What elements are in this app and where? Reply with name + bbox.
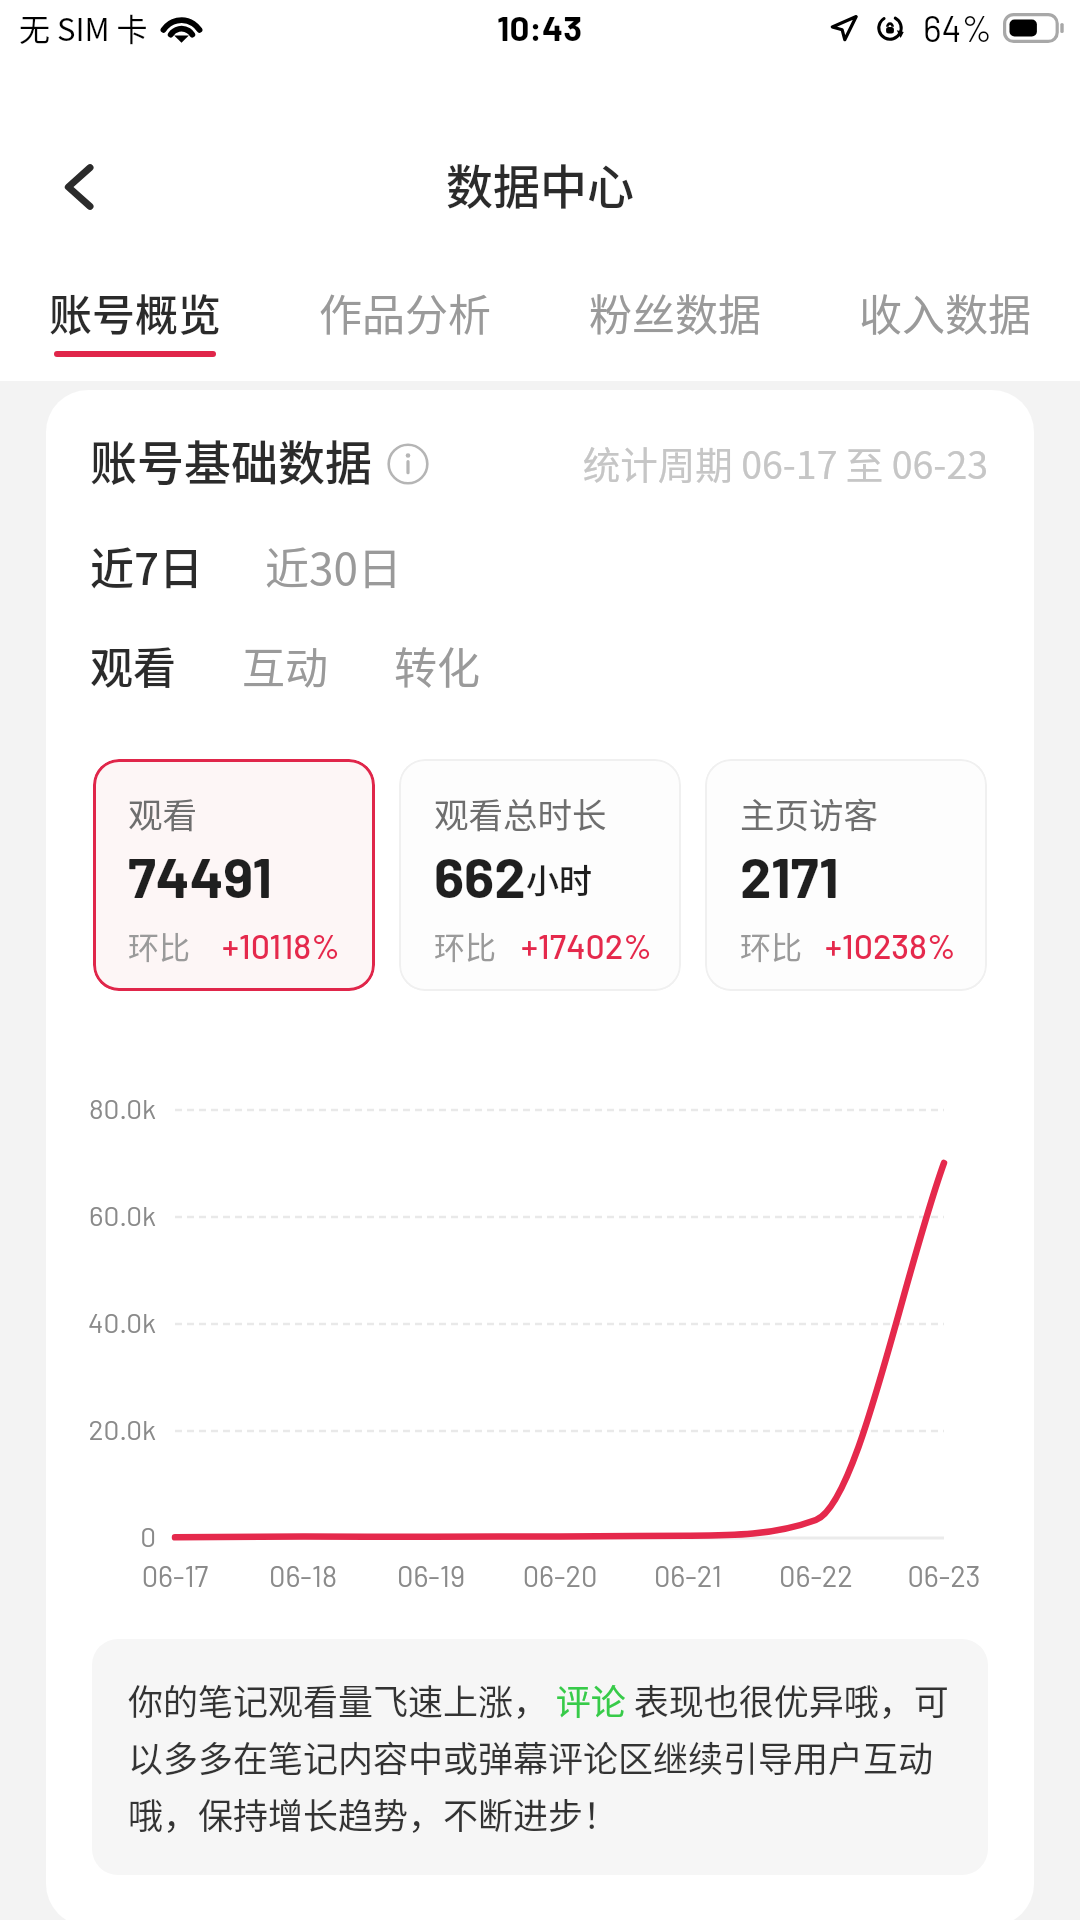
staticText: 80.0k	[0, 1091, 156, 1125]
staticText: 2171	[740, 842, 839, 909]
staticText: 观看	[128, 788, 197, 838]
staticText: 近30日	[265, 534, 402, 598]
staticText: 06-19	[361, 1558, 501, 1593]
staticText: 数据中心	[446, 149, 634, 217]
staticText: 近7日	[90, 534, 204, 598]
staticText: 收入数据	[859, 281, 1031, 343]
button[interactable]: 主页访客	[705, 759, 987, 991]
button[interactable]: 收入数据	[810, 281, 1080, 375]
staticText: 06-20	[490, 1558, 630, 1593]
staticText: 无 SIM 卡	[19, 5, 148, 50]
staticText: +10238%	[825, 925, 956, 966]
staticText: 环比	[128, 923, 190, 968]
button[interactable]: 观看总时长	[399, 759, 681, 991]
button[interactable]: 近7日	[90, 534, 204, 598]
staticText: 10:43	[497, 6, 583, 48]
staticText: 06-21	[618, 1558, 758, 1593]
staticText: +17402%	[521, 925, 652, 966]
staticText: 作品分析	[319, 281, 491, 343]
staticText: 主页访客	[740, 788, 878, 838]
staticText: 662	[434, 842, 526, 909]
staticText: 环比	[434, 923, 496, 968]
button[interactable]: 观看	[90, 634, 176, 696]
staticText: 06-18	[233, 1558, 373, 1593]
staticText: 0	[0, 1519, 156, 1553]
staticText: 统计周期 06-17 至 06-23	[0, 435, 988, 489]
button[interactable]: 互动	[242, 634, 328, 696]
button[interactable]: Back	[52, 149, 128, 225]
staticText: 40.0k	[0, 1305, 156, 1339]
staticText: 环比	[740, 923, 802, 968]
staticText: 账号基础数据	[90, 425, 372, 493]
button[interactable]: 作品分析	[270, 281, 540, 375]
staticText: 互动	[242, 634, 328, 696]
button[interactable]: 近30日	[265, 534, 402, 598]
staticText: 观看总时长	[434, 788, 607, 838]
button[interactable]: 粉丝数据	[540, 281, 810, 375]
staticText: 账号概览	[49, 281, 221, 343]
staticText: 06-22	[746, 1558, 886, 1593]
button[interactable]: Info	[387, 443, 429, 485]
staticText: 06-23	[874, 1558, 1014, 1593]
staticText: 转化	[394, 634, 480, 696]
staticText: 小时	[526, 855, 592, 903]
button[interactable]: 账号概览	[0, 281, 270, 375]
staticText: 60.0k	[0, 1198, 156, 1232]
staticText: 64%	[923, 6, 992, 49]
staticText: 粉丝数据	[589, 281, 761, 343]
staticText: 20.0k	[0, 1412, 156, 1446]
button[interactable]: 观看	[93, 759, 375, 991]
staticText: 你的笔记观看量飞速上涨， 评论 表现也很优异哦，可以多多在笔记内容中或弹幕评论区…	[128, 1674, 960, 1839]
staticText: 74491	[128, 842, 272, 909]
staticText: +10118%	[222, 925, 340, 966]
button[interactable]: 转化	[394, 634, 480, 696]
staticText: 06-17	[105, 1558, 245, 1593]
staticText: 观看	[90, 634, 176, 696]
